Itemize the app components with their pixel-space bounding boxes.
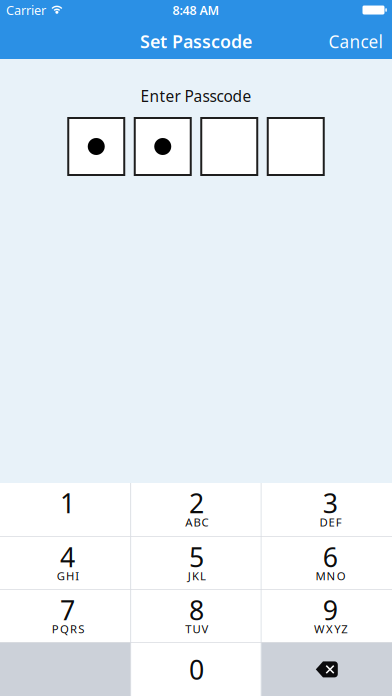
button[interactable]: 8 [131, 590, 261, 642]
staticText: A [185, 514, 192, 530]
staticText: 6 [323, 539, 338, 575]
staticText: X [326, 621, 333, 636]
staticText: D [319, 514, 327, 530]
staticText: 8:48 AM [172, 2, 219, 19]
button[interactable]: 5 [131, 537, 261, 589]
staticText: R [70, 621, 77, 636]
staticText: V [202, 621, 209, 636]
button[interactable]: 9 [262, 590, 392, 642]
staticText: C [202, 514, 209, 530]
staticText: Enter Passcode [140, 85, 251, 107]
staticText: 5 [189, 539, 204, 575]
staticText: U [192, 621, 200, 636]
staticText: Z [341, 621, 347, 636]
staticText: 0 [189, 651, 204, 687]
button[interactable]: 7 [0, 590, 130, 642]
staticText: E [329, 514, 335, 530]
staticText: B [193, 514, 200, 530]
staticText: H [66, 568, 74, 583]
staticText: L [200, 568, 206, 583]
staticText: 3 [323, 485, 338, 521]
staticText: Y [334, 621, 340, 636]
staticText: T [185, 621, 191, 636]
staticText: 4 [60, 539, 75, 575]
button[interactable]: Cancel [319, 20, 392, 59]
button[interactable]: 3 [262, 483, 392, 536]
button[interactable]: 2 [131, 483, 261, 536]
staticText: 7 [60, 592, 75, 628]
button[interactable]: 0 [131, 643, 261, 696]
staticText: Cancel [328, 30, 382, 53]
staticText: 2 [189, 485, 204, 521]
button[interactable]: Delete [262, 643, 392, 696]
staticText: 9 [323, 592, 338, 628]
staticText: Q [60, 621, 69, 636]
staticText: 1 [60, 485, 75, 521]
button[interactable]: 6 [262, 537, 392, 589]
staticText: M [315, 568, 325, 583]
button[interactable]: 1 [0, 483, 130, 536]
staticText: O [337, 568, 346, 583]
staticText: N [327, 568, 336, 583]
staticText: K [192, 568, 199, 583]
staticText: G [57, 568, 65, 583]
staticText: 8 [189, 592, 204, 628]
staticText: W [314, 621, 325, 636]
staticText: F [336, 514, 342, 530]
staticText: J [188, 568, 191, 583]
staticText: S [78, 621, 84, 636]
staticText: I [75, 568, 79, 583]
staticText: Set Passcode [140, 29, 252, 53]
button[interactable]: 4 [0, 537, 130, 589]
staticText: P [52, 621, 59, 636]
staticText: Carrier [6, 1, 46, 19]
